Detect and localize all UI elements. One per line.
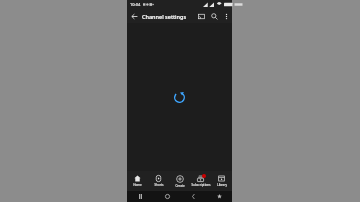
button[interactable]: Library: [211, 171, 232, 191]
button[interactable]: Back: [180, 191, 206, 202]
button[interactable]: More options: [221, 11, 232, 22]
button[interactable]: Create: [169, 171, 190, 191]
button[interactable]: Home: [127, 171, 148, 191]
staticText: Shorts: [154, 183, 164, 187]
staticText: Create: [175, 184, 185, 188]
staticText: Channel settings: [142, 13, 187, 20]
button[interactable]: Subscriptions: [190, 171, 211, 191]
staticText: Home: [133, 183, 142, 187]
button[interactable]: Cast: [195, 10, 208, 23]
button[interactable]: Back: [127, 9, 141, 23]
staticText: Subscriptions: [191, 183, 211, 187]
button[interactable]: Screenshot: [206, 191, 232, 202]
staticText: 10:04: [130, 2, 141, 7]
button[interactable]: Search: [208, 10, 221, 23]
button[interactable]: Shorts: [148, 171, 169, 191]
button[interactable]: Home: [154, 191, 180, 202]
button[interactable]: Recents: [127, 191, 154, 202]
staticText: Library: [217, 183, 227, 187]
